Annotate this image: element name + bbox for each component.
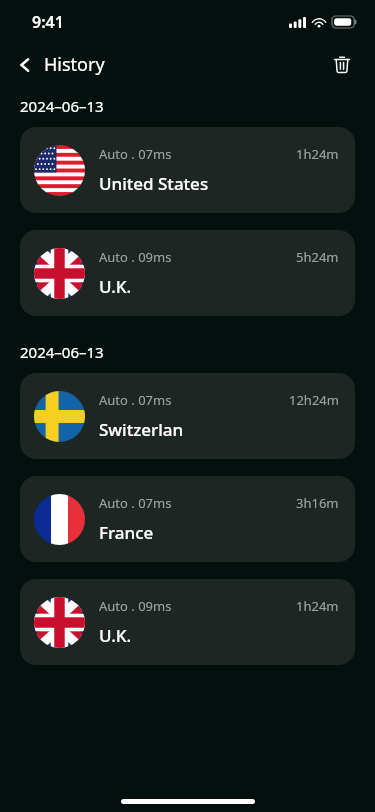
other: Back bbox=[14, 54, 36, 76]
button[interactable]: Auto . 07ms bbox=[20, 476, 355, 562]
staticText: Auto . 07ms bbox=[99, 494, 296, 512]
staticText: 2024–06–13 bbox=[20, 96, 104, 116]
button[interactable]: Auto . 09ms bbox=[20, 230, 355, 316]
button[interactable]: Delete history bbox=[325, 47, 359, 81]
staticText: U.K. bbox=[99, 624, 132, 647]
staticText: 9:41 bbox=[32, 11, 64, 33]
staticText: United States bbox=[99, 172, 209, 195]
staticText: 5h24m bbox=[296, 248, 339, 266]
staticText: Auto . 07ms bbox=[99, 145, 296, 163]
staticText: Auto . 09ms bbox=[99, 597, 296, 615]
staticText: 12h24m bbox=[289, 391, 339, 409]
staticText: U.K. bbox=[99, 275, 132, 298]
staticText: Auto . 09ms bbox=[99, 248, 296, 266]
staticText: 3h16m bbox=[296, 494, 339, 512]
staticText: Switzerlan bbox=[99, 418, 184, 441]
button[interactable]: Auto . 07ms bbox=[20, 373, 355, 459]
button[interactable]: Auto . 07ms bbox=[20, 127, 355, 213]
button[interactable]: Back bbox=[0, 48, 113, 81]
button[interactable]: Auto . 09ms bbox=[20, 579, 355, 665]
staticText: 1h24m bbox=[296, 145, 339, 163]
staticText: France bbox=[99, 521, 154, 544]
staticText: 2024–06–13 bbox=[20, 342, 104, 362]
staticText: 1h24m bbox=[296, 597, 339, 615]
staticText: History bbox=[44, 52, 105, 77]
staticText: Auto . 07ms bbox=[99, 391, 289, 409]
